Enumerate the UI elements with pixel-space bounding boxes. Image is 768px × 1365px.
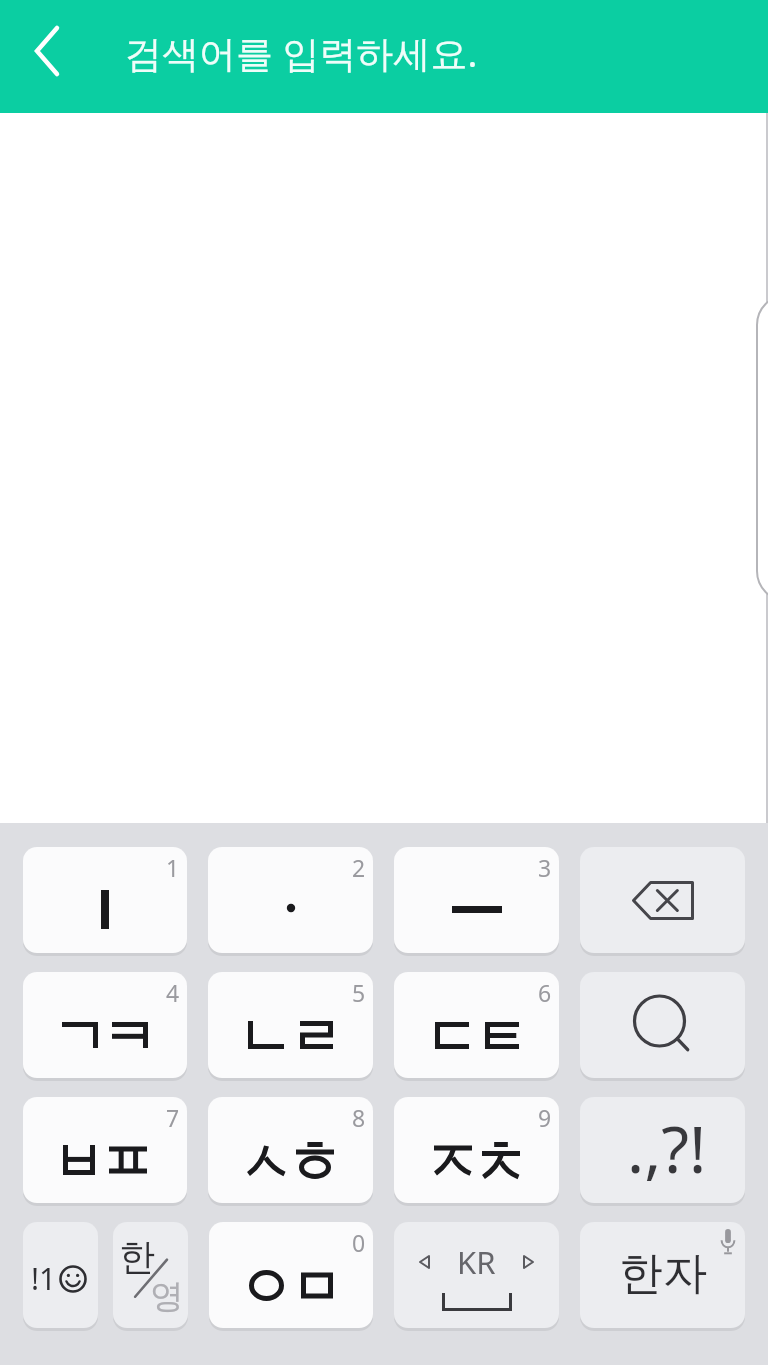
button[interactable]: 5 <box>208 972 373 1078</box>
staticText: 0 <box>352 1227 366 1258</box>
staticText: 7 <box>166 1102 180 1133</box>
button[interactable] <box>10 15 82 87</box>
button[interactable]: 7 <box>23 1097 187 1203</box>
staticText: 한자 <box>619 1246 707 1301</box>
staticText: 2 <box>352 852 366 883</box>
staticText: 5 <box>352 977 366 1008</box>
button[interactable] <box>580 972 745 1078</box>
staticText: 1 <box>166 852 180 883</box>
staticText: !1 <box>31 1258 57 1299</box>
button[interactable]: 한 <box>113 1222 188 1328</box>
staticText: 한 <box>119 1234 155 1279</box>
button[interactable]: 4 <box>23 972 187 1078</box>
button[interactable]: 3 <box>394 847 559 953</box>
button[interactable]: 8 <box>208 1097 373 1203</box>
button[interactable]: 0 <box>209 1222 373 1328</box>
button[interactable]: 6 <box>394 972 559 1078</box>
staticText: 3 <box>538 852 552 883</box>
staticText: 9 <box>538 1102 552 1133</box>
button[interactable]: 1 <box>23 847 187 953</box>
staticText: KR <box>457 1241 496 1283</box>
staticText: 4 <box>166 977 180 1008</box>
button[interactable] <box>580 847 745 953</box>
staticText: 6 <box>538 977 552 1008</box>
staticText: 8 <box>352 1102 366 1133</box>
button[interactable]: !1 <box>23 1222 98 1328</box>
button[interactable]: .,?! <box>580 1097 745 1203</box>
button[interactable]: 한자 <box>580 1222 745 1328</box>
staticText: 검색어를 입력하세요. <box>125 27 478 78</box>
button[interactable]: KR <box>394 1222 559 1328</box>
button[interactable]: 2 <box>208 847 373 953</box>
button[interactable]: 9 <box>394 1097 559 1203</box>
staticText: .,?! <box>627 1105 707 1192</box>
staticText: 영 <box>150 1275 184 1318</box>
